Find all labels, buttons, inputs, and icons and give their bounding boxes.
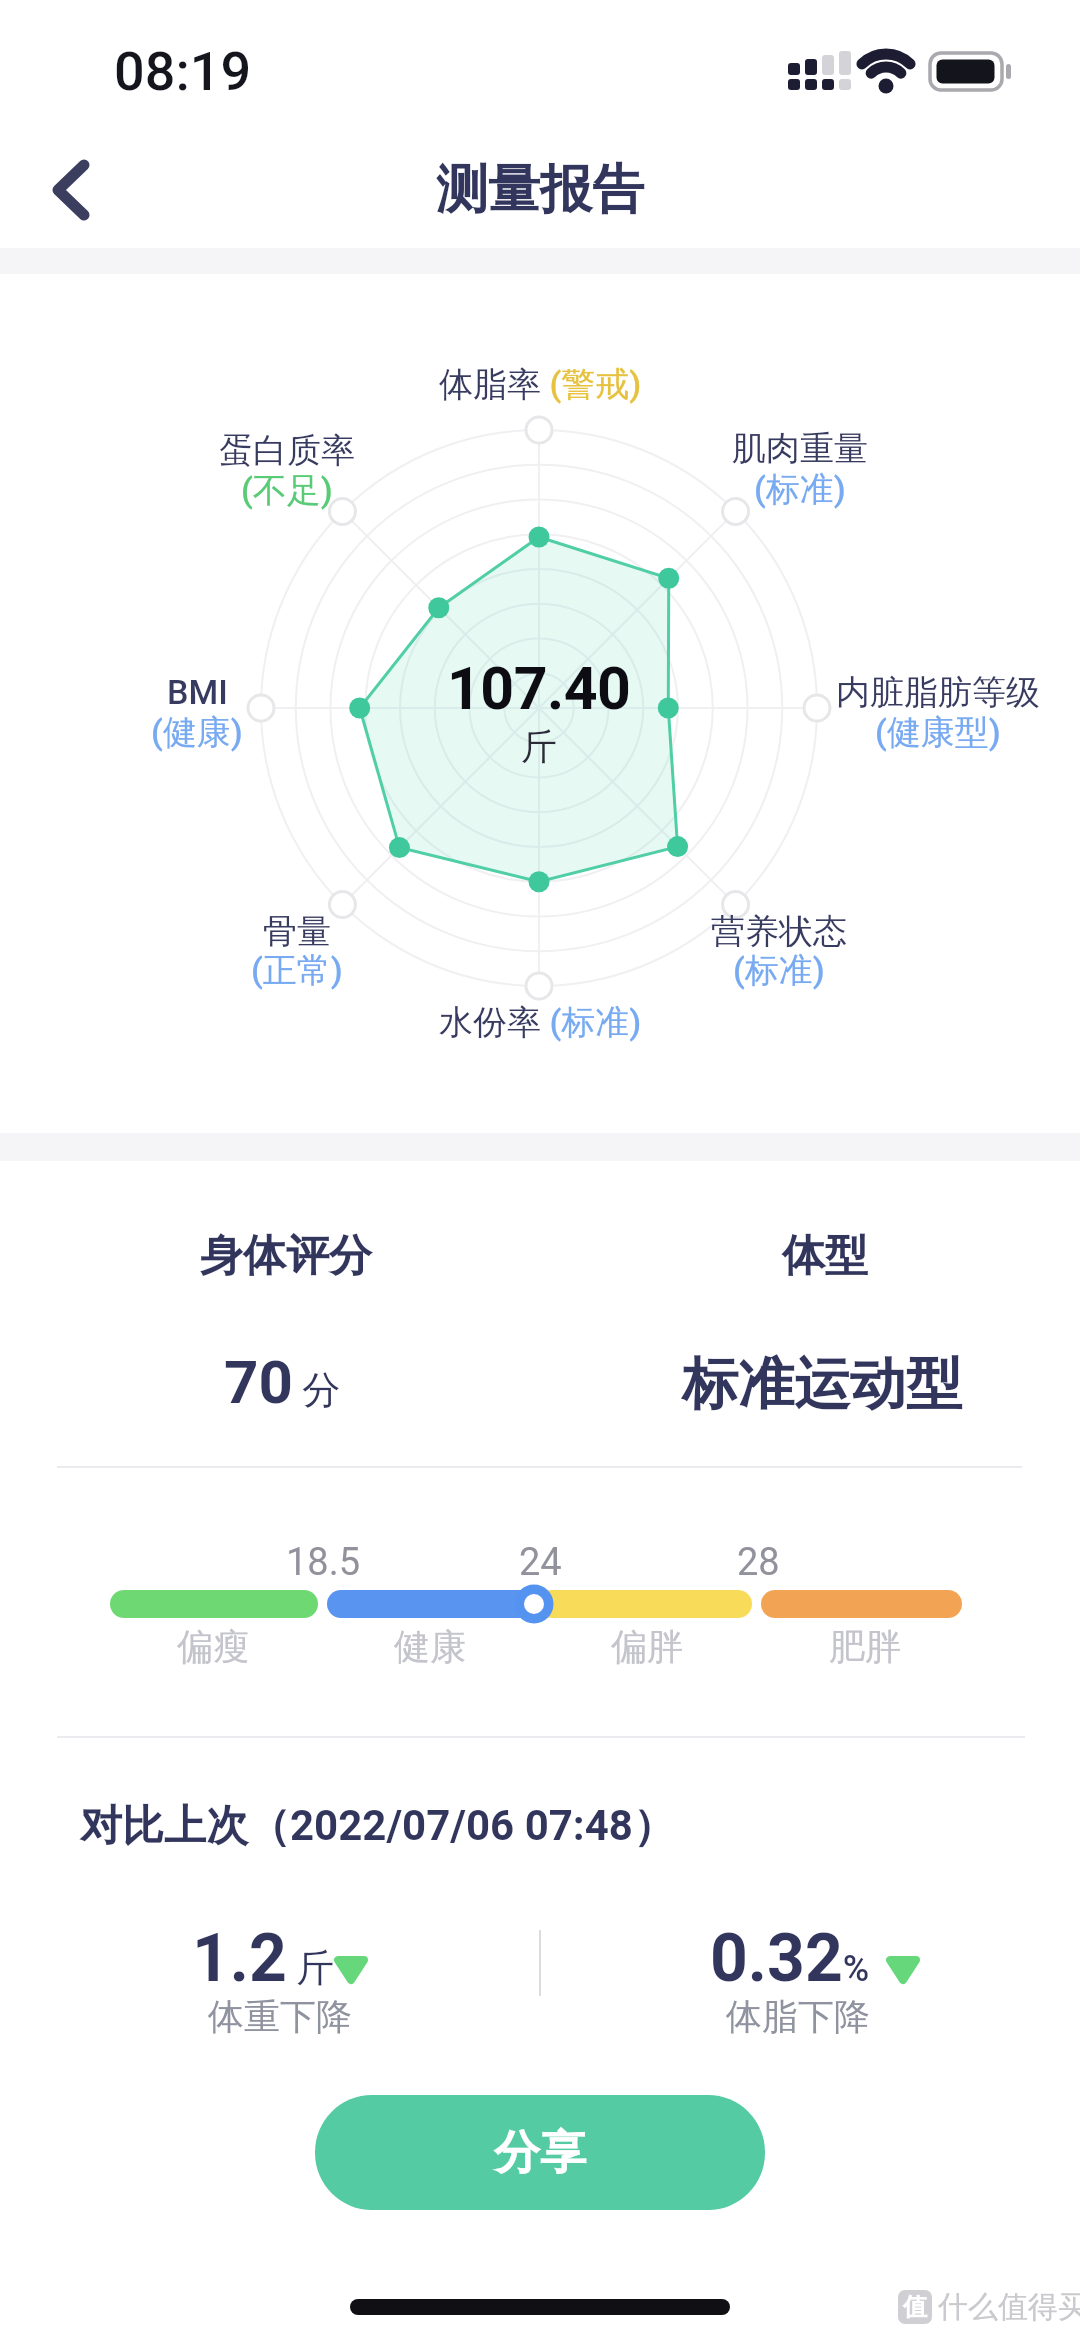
staticText: (标准) [754, 468, 846, 511]
staticText: 身体评分 [200, 1229, 372, 1283]
staticText: 107.40 [447, 654, 631, 723]
staticText: 内脏脂肪等级 [836, 671, 1040, 714]
staticText: 健康 [394, 1624, 466, 1669]
staticText: 值 [903, 2292, 927, 2322]
staticText: 18.5 [286, 1540, 361, 1585]
staticText: (标准) [733, 949, 825, 992]
staticText: (健康) [151, 711, 243, 754]
staticText: 24 [519, 1540, 562, 1585]
staticText: 1.2 斤 [192, 1920, 335, 1997]
staticText: 什么值得买 [938, 2288, 1080, 2326]
staticText: 08:19 [114, 40, 252, 103]
staticText: 水份率 (标准) [439, 1001, 642, 1044]
staticText: 营养状态 [711, 910, 847, 953]
staticText: 体型 [782, 1229, 868, 1283]
button[interactable] [30, 150, 120, 230]
staticText: 偏瘦 [177, 1624, 249, 1669]
staticText: 测量报告 [436, 157, 644, 223]
staticText: 体脂率 (警戒) [439, 363, 642, 406]
staticText: 0.32% [710, 1920, 870, 1997]
staticText: 28 [737, 1540, 780, 1585]
staticText: 标准运动型 [682, 1349, 962, 1420]
staticText: 斤 [521, 724, 557, 769]
staticText: 骨量 [263, 910, 331, 953]
staticText: 肌肉重量 [732, 427, 868, 470]
staticText: (不足) [241, 469, 333, 512]
staticText: 对比上次（2022/07/06 07:48） [80, 1800, 675, 1853]
staticText: 蛋白质率 [219, 429, 355, 472]
staticText: 70 分 [224, 1347, 341, 1417]
staticText: 分享 [494, 2124, 586, 2182]
staticText: 肥胖 [829, 1624, 901, 1669]
staticText: (健康型) [875, 711, 1001, 754]
staticText: BMI [167, 672, 228, 712]
staticText: 体脂下降 [726, 1994, 870, 2039]
staticText: 偏胖 [611, 1624, 683, 1669]
button[interactable]: 分享 [315, 2095, 765, 2210]
staticText: 体重下降 [208, 1994, 352, 2039]
staticText: (正常) [251, 949, 343, 992]
